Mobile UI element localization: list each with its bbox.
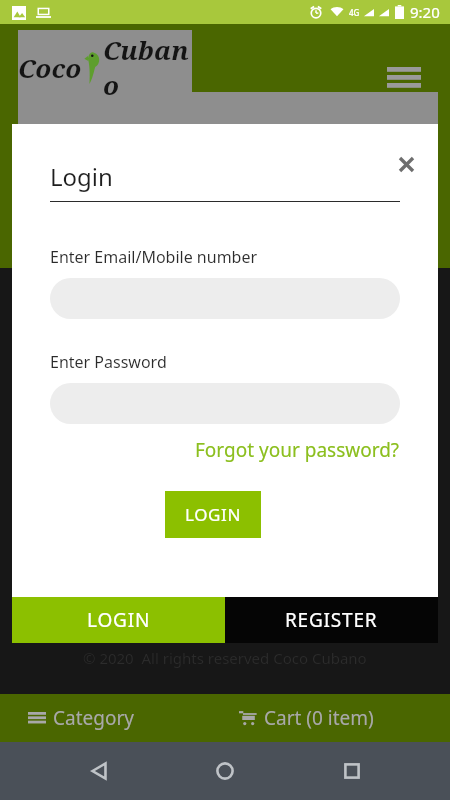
- button[interactable]: Back: [71, 743, 127, 799]
- staticText: Enter Email/Mobile number: [50, 246, 258, 268]
- staticText: Coco: [18, 50, 82, 85]
- staticText: © 2020 All rights reserved Coco Cubano: [83, 648, 367, 668]
- staticText: 4G: [349, 7, 360, 18]
- staticText: Cubano: [103, 32, 192, 102]
- staticText: Category: [53, 705, 134, 731]
- button[interactable]: Recent apps: [324, 743, 380, 799]
- button[interactable]: Cart (0 item): [225, 694, 450, 742]
- staticText: Cart (0 item): [264, 705, 374, 731]
- staticText: LOGIN: [185, 503, 241, 526]
- staticText: REGISTER: [285, 607, 378, 633]
- button[interactable]: LOGIN: [12, 597, 225, 643]
- button[interactable]: REGISTER: [225, 597, 438, 643]
- button[interactable]: Home: [197, 743, 253, 799]
- button[interactable]: Category: [0, 694, 225, 742]
- button[interactable]: Menu: [384, 62, 424, 96]
- button[interactable]: LOGIN: [165, 491, 261, 538]
- button[interactable]: Coco Cubano Rouse Hill home: [18, 30, 192, 102]
- staticText: Login: [50, 160, 113, 193]
- button[interactable]: Close: [388, 146, 424, 182]
- staticText: Enter Password: [50, 351, 167, 373]
- staticText: LOGIN: [87, 607, 151, 633]
- button[interactable]: Forgot your password?: [195, 437, 400, 463]
- staticText: 9:20: [410, 2, 440, 22]
